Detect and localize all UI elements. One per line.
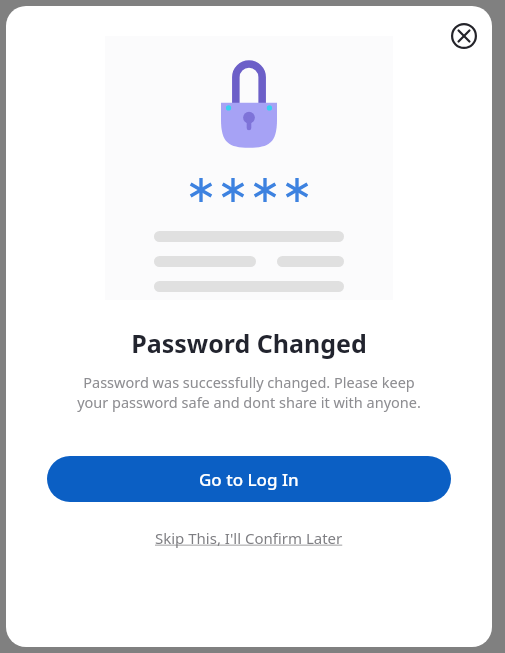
staticText: Password was successfully changed. Pleas… xyxy=(77,372,421,412)
staticText: Go to Log In xyxy=(199,468,299,491)
button[interactable]: Go to Log In xyxy=(47,456,451,502)
staticText: Password Changed xyxy=(131,326,367,360)
staticText: Skip This, I'll Confirm Later xyxy=(155,528,343,548)
button[interactable]: Close xyxy=(447,19,481,53)
button[interactable]: Skip This, I'll Confirm Later xyxy=(149,524,349,552)
